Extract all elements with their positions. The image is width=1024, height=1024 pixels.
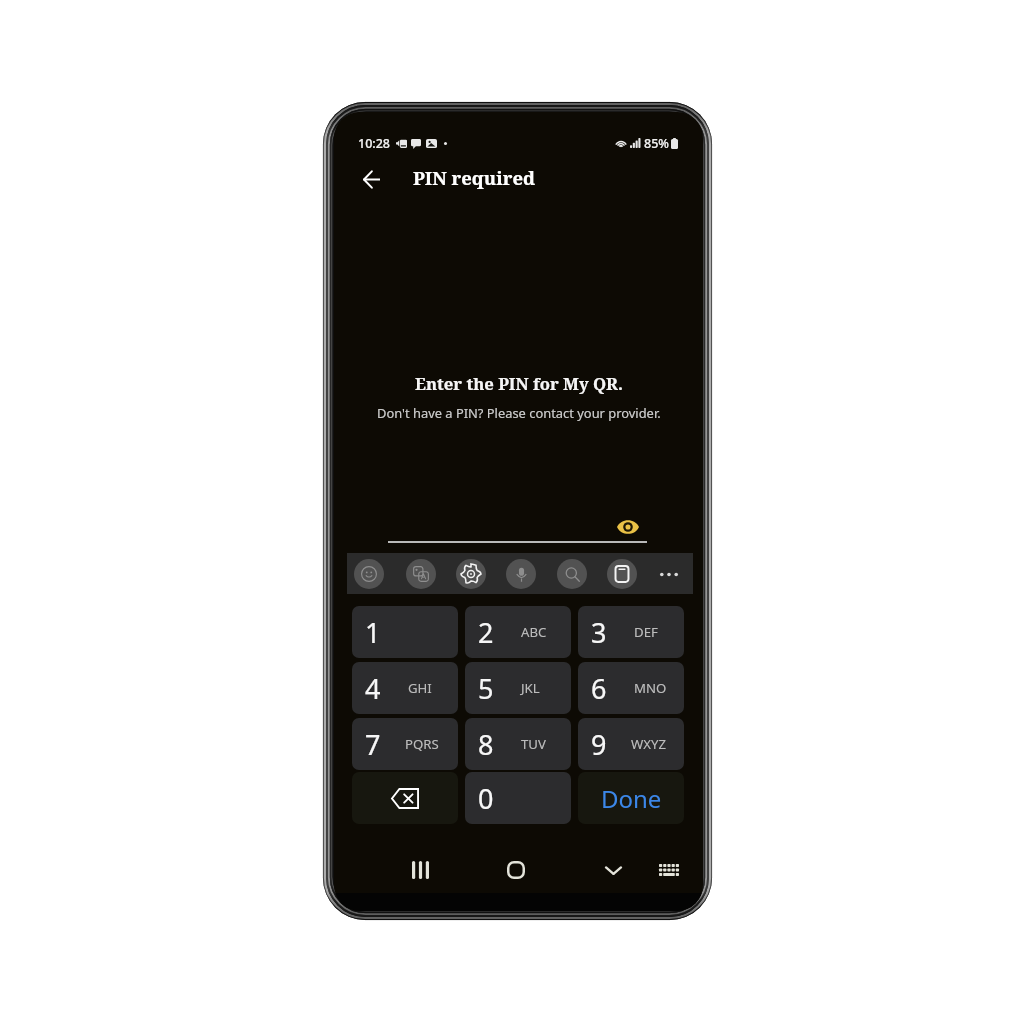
button[interactable]: Keyboard settings [456, 559, 486, 589]
button[interactable]: Backspace [352, 772, 458, 824]
button[interactable]: Search [557, 559, 587, 589]
staticText: PIN required [413, 165, 535, 190]
staticText: 85% [644, 135, 669, 152]
button[interactable]: 4 [352, 662, 458, 714]
button[interactable]: Switch keyboard [649, 850, 689, 890]
staticText: 7 [365, 726, 381, 763]
staticText: 6 [591, 670, 607, 707]
staticText: 5 [478, 670, 494, 707]
button[interactable]: Hide keyboard [593, 850, 633, 890]
staticText: Don't have a PIN? Please contact your pr… [377, 404, 661, 422]
button[interactable]: 6 [578, 662, 684, 714]
button[interactable]: Voice input [506, 559, 536, 589]
button[interactable]: 3 [578, 606, 684, 658]
button[interactable]: Back [348, 156, 394, 202]
staticText: 0 [478, 780, 494, 817]
staticText: MNO [634, 679, 667, 697]
staticText: WXYZ [631, 735, 666, 753]
staticText: PQRS [405, 735, 439, 753]
staticText: ABC [521, 623, 547, 641]
button[interactable]: 2 [465, 606, 571, 658]
staticText: 10:28 [358, 135, 391, 152]
button[interactable]: Emoji [354, 559, 384, 589]
staticText: 1 [365, 614, 381, 651]
staticText: JKL [521, 679, 540, 697]
button[interactable]: 0 [465, 772, 571, 824]
button[interactable]: 5 [465, 662, 571, 714]
button[interactable]: 7 [352, 718, 458, 770]
button[interactable]: Recents [400, 850, 440, 890]
button[interactable]: Show PIN [613, 512, 642, 541]
button[interactable]: Done [578, 772, 684, 824]
staticText: Done [601, 782, 662, 815]
staticText: 9 [591, 726, 607, 763]
staticText: 2 [478, 614, 494, 651]
staticText: GHI [408, 679, 432, 697]
button[interactable]: More options [654, 559, 684, 589]
button[interactable]: Stickers [406, 559, 436, 589]
staticText: 8 [478, 726, 494, 763]
staticText: 3 [591, 614, 607, 651]
staticText: DEF [634, 623, 658, 641]
button[interactable]: 8 [465, 718, 571, 770]
button[interactable]: Clipboard [607, 559, 637, 589]
button[interactable]: Home [496, 850, 536, 890]
staticText: 4 [365, 670, 381, 707]
staticText: TUV [521, 735, 546, 753]
staticText: Enter the PIN for My QR. [415, 372, 623, 395]
button[interactable]: 9 [578, 718, 684, 770]
button[interactable]: 1 [352, 606, 458, 658]
